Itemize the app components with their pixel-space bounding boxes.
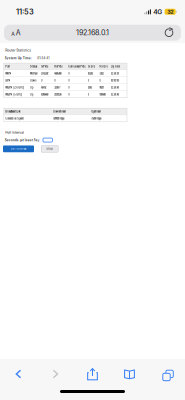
staticText: Collisions/Pkts (68, 64, 85, 68)
staticText: Connection Speed (5, 116, 23, 120)
staticText: 0 (68, 85, 69, 89)
staticText: Status (30, 64, 37, 68)
staticText: 01:34:41 (37, 56, 49, 60)
staticText: Poll Interval (5, 130, 24, 134)
staticText: 01:34:40 (111, 85, 119, 89)
staticText: 32 (167, 8, 173, 15)
staticText: 2741592 (41, 71, 48, 75)
button[interactable]: Forward (37, 363, 74, 385)
staticText: 81342 (88, 71, 93, 75)
staticText: RxPkts (54, 64, 62, 68)
staticText: 2039134 (54, 92, 61, 96)
staticText: TxPkts (41, 64, 48, 68)
button[interactable]: Page settings (4, 25, 28, 41)
staticText: 0 (99, 78, 100, 82)
staticText: WAN (5, 71, 11, 75)
button[interactable]: Back (0, 363, 37, 385)
staticText: 0 (68, 71, 69, 75)
staticText: A (16, 28, 21, 37)
staticText: 01:34:40 (111, 92, 119, 96)
staticText: 0 (68, 92, 69, 96)
staticText: 0 (54, 78, 55, 82)
staticText: 75000 kbps (91, 116, 101, 120)
staticText: 0 (68, 78, 69, 82)
staticText: 9629 (99, 85, 103, 89)
button[interactable]: Set Interval (3, 145, 34, 152)
staticText: 0 (88, 92, 89, 96)
staticText: Up (30, 92, 33, 96)
staticText: A (11, 31, 15, 37)
staticText: 103077 (54, 85, 60, 89)
staticText: 4485368 (54, 71, 61, 75)
staticText: Seconds (at least 5s): (5, 138, 40, 142)
button[interactable]: Reload (157, 25, 181, 41)
staticText: 192.168.0.1 (76, 28, 109, 37)
staticText: Rx B/s (99, 64, 107, 68)
staticText: 4G (153, 8, 162, 16)
staticText: Up Time (111, 64, 120, 68)
staticText: Set Interval (10, 147, 26, 150)
staticText: 11:53 (16, 7, 34, 16)
staticText: 0 (88, 78, 89, 82)
staticText: 00:00:00 (111, 78, 119, 82)
staticText: Down (30, 78, 36, 82)
staticText: 3102 (99, 71, 103, 75)
button[interactable]: Tabs (148, 363, 185, 385)
button[interactable]: Share (74, 363, 111, 385)
staticText: Method (30, 71, 37, 75)
staticText: WLAN (2.4 GHz) (5, 85, 24, 89)
staticText: LAN (5, 78, 10, 82)
staticText: 01:34:30 (111, 71, 119, 75)
staticText: Up (30, 85, 33, 89)
staticText: 599000 kbps (53, 116, 64, 120)
button[interactable]: 192.168.0.1 (28, 25, 157, 41)
button[interactable]: Bookmarks (111, 363, 148, 385)
staticText: 930648 (99, 92, 105, 96)
staticText: WLAN (5 GHz) (5, 92, 22, 96)
staticText: Router Statistics (5, 48, 31, 52)
staticText: 0 (41, 78, 42, 82)
staticText: 46762 (41, 85, 46, 89)
staticText: Downstream (53, 109, 66, 113)
staticText: 2363 (88, 85, 92, 89)
staticText: Tx B/s (88, 64, 95, 68)
staticText: Broadband Link (5, 109, 20, 113)
staticText: Upstream (91, 109, 101, 113)
staticText: 8385448 (41, 92, 48, 96)
staticText: Port (5, 64, 10, 68)
staticText: Stop (46, 147, 53, 150)
button[interactable]: Stop (41, 145, 58, 152)
staticText: System Up Time: (5, 56, 32, 60)
